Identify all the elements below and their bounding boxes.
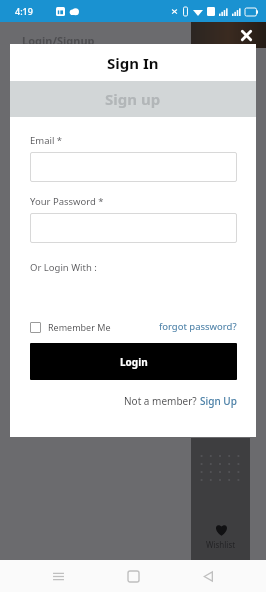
staticText: Or Login With : — [30, 261, 97, 274]
button[interactable]: forgot password? — [159, 318, 237, 335]
button[interactable]: Sign In — [10, 44, 256, 81]
button[interactable]: Remember Me — [30, 319, 111, 335]
button[interactable]: Login — [30, 343, 237, 380]
button[interactable]: Password field — [30, 213, 237, 243]
staticText: Sign In — [107, 53, 159, 73]
button[interactable]: Email field — [30, 152, 237, 182]
button[interactable]: Sign Up — [200, 394, 237, 408]
button[interactable]: Back — [191, 560, 225, 592]
staticText: Sign up — [105, 89, 161, 109]
staticText: 4:19 — [15, 5, 33, 17]
staticText: Login/Signup — [22, 33, 95, 48]
button[interactable]: Home — [116, 560, 150, 592]
staticText: Your Password * — [30, 195, 104, 208]
staticText: Login — [120, 355, 148, 369]
button[interactable]: Close — [236, 25, 256, 45]
button[interactable]: Recent apps — [41, 560, 75, 592]
staticText: Not a member? — [124, 394, 200, 408]
staticText: Sign Up — [200, 394, 237, 408]
staticText: Wishlist — [206, 539, 236, 550]
button[interactable]: Wishlist — [206, 522, 236, 550]
staticText: Email * — [30, 134, 63, 147]
staticText: Remember Me — [48, 321, 111, 333]
staticText: forgot password? — [159, 320, 237, 333]
button[interactable]: Sign up — [10, 81, 256, 117]
